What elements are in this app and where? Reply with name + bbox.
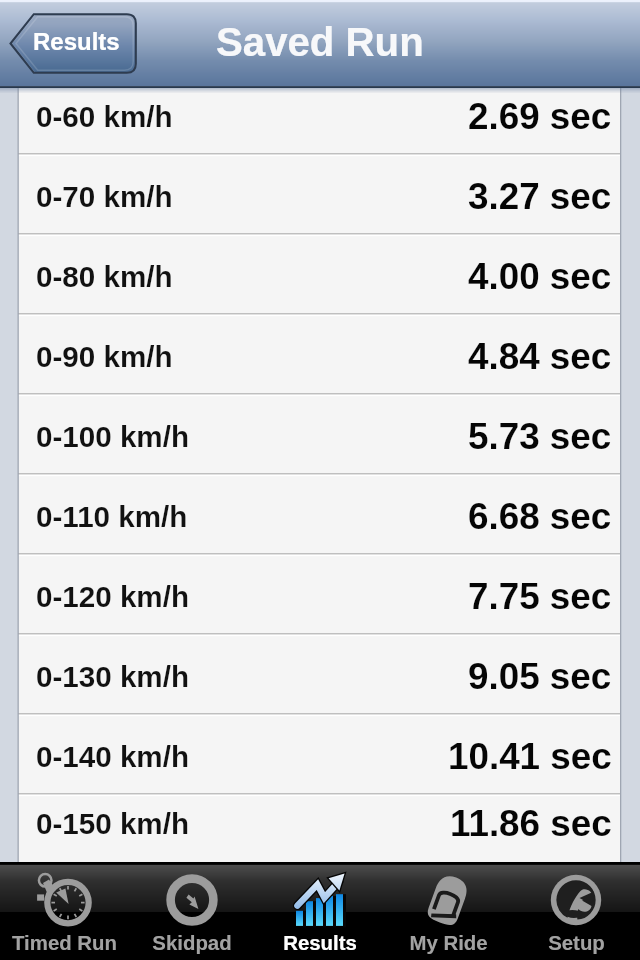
button[interactable]: Setup xyxy=(512,862,640,960)
button[interactable]: 0-120 km/h xyxy=(18,553,621,633)
staticText: Saved Run xyxy=(216,20,424,65)
button[interactable]: 0-100 km/h xyxy=(18,393,621,473)
staticText: Results xyxy=(33,28,120,55)
button[interactable]: 0-110 km/h xyxy=(18,473,621,553)
staticText: 10.41 sec xyxy=(448,736,612,777)
staticText: Skidpad xyxy=(152,932,232,955)
staticText: 0-130 km/h xyxy=(36,660,189,693)
staticText: 0-120 km/h xyxy=(36,580,189,613)
button[interactable]: Skidpad xyxy=(128,862,256,960)
staticText: 0-60 km/h xyxy=(36,100,173,133)
button[interactable]: Back to Results xyxy=(9,13,137,74)
staticText: Timed Run xyxy=(12,932,117,955)
button[interactable]: 0-80 km/h xyxy=(18,233,621,313)
staticText: 9.05 sec xyxy=(468,656,612,697)
staticText: 4.00 sec xyxy=(468,256,612,297)
staticText: Results xyxy=(283,932,357,955)
staticText: My Ride xyxy=(409,932,488,955)
button[interactable]: 0-90 km/h xyxy=(18,313,621,393)
button[interactable]: Timed Run xyxy=(0,862,128,960)
staticText: 2.69 sec xyxy=(468,96,612,137)
staticText: 0-90 km/h xyxy=(36,340,173,373)
button[interactable]: 0-140 km/h xyxy=(18,713,621,793)
staticText: 0-70 km/h xyxy=(36,180,173,213)
staticText: Setup xyxy=(548,932,605,955)
staticText: 0-80 km/h xyxy=(36,260,173,293)
staticText: 5.73 sec xyxy=(468,416,612,457)
button[interactable]: My Ride xyxy=(384,862,512,960)
staticText: 0-110 km/h xyxy=(36,500,188,533)
button[interactable]: 0-70 km/h xyxy=(18,153,621,233)
staticText: 11.86 sec xyxy=(450,803,612,844)
staticText: 0-100 km/h xyxy=(36,420,189,453)
staticText: 0-140 km/h xyxy=(36,740,189,773)
staticText: 7.75 sec xyxy=(468,576,612,617)
button[interactable]: 0-130 km/h xyxy=(18,633,621,713)
button[interactable]: Results xyxy=(256,862,384,960)
staticText: 3.27 sec xyxy=(468,176,612,217)
staticText: 6.68 sec xyxy=(468,496,612,537)
button[interactable]: 0-150 km/h xyxy=(18,793,621,847)
staticText: 0-150 km/h xyxy=(36,807,189,840)
button[interactable]: 0-60 km/h xyxy=(18,88,621,153)
staticText: 4.84 sec xyxy=(468,336,612,377)
